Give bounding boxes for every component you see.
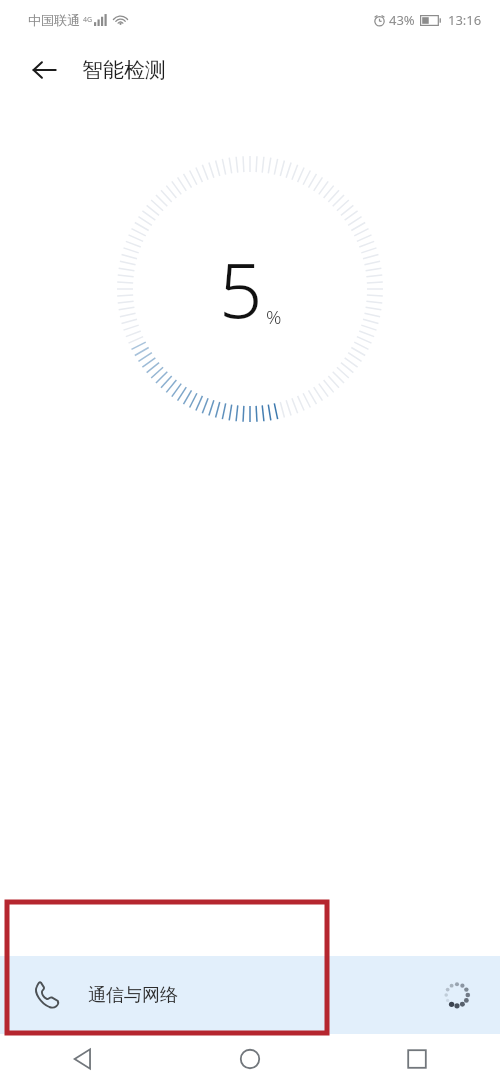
button[interactable]: Back [22,48,66,92]
staticText: 13:16 [448,11,482,29]
button[interactable]: Back [0,1034,166,1083]
button[interactable]: Recents [333,1034,500,1083]
staticText: 通信与网络 [88,984,178,1007]
staticText: 5 [219,237,263,341]
button[interactable]: Home [166,1034,333,1083]
staticText: 43% [389,11,415,29]
staticText: 智能检测 [82,57,166,83]
button[interactable]: 通信与网络 [0,956,500,1034]
staticText: 中国联通 [28,12,80,28]
staticText: 4G [83,15,93,25]
staticText: % [266,304,282,330]
